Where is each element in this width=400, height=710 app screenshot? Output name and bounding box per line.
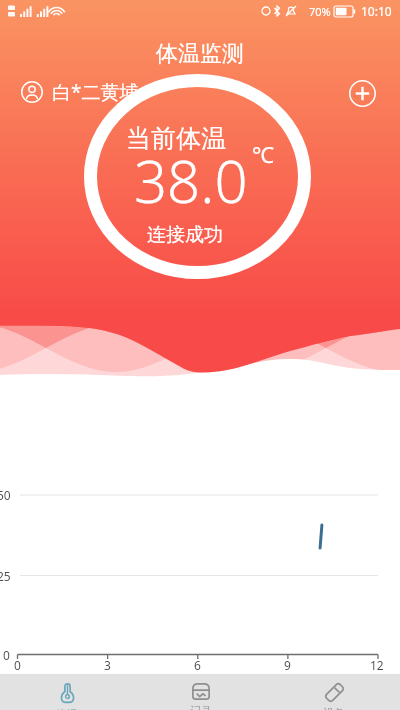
- staticText: 12: [370, 657, 384, 673]
- button[interactable]: 白*二黄埔: [21, 79, 139, 105]
- staticText: 体温: [56, 707, 78, 710]
- button[interactable]: Device: [267, 674, 400, 710]
- staticText: 记录: [190, 704, 212, 710]
- staticText: 白*二黄埔: [52, 79, 139, 105]
- staticText: 体温监测: [0, 40, 400, 68]
- staticText: 10:10: [361, 3, 392, 19]
- staticText: 50: [0, 487, 11, 503]
- staticText: ℃: [252, 139, 274, 169]
- button[interactable]: Add device: [349, 80, 376, 107]
- staticText: 0: [3, 647, 10, 663]
- staticText: 0: [14, 657, 21, 673]
- staticText: 3: [104, 657, 111, 673]
- staticText: 70%: [309, 4, 331, 19]
- staticText: 6: [194, 657, 201, 673]
- staticText: 连接成功: [147, 223, 223, 247]
- staticText: 设备: [323, 706, 345, 710]
- staticText: 当前体温: [126, 123, 226, 154]
- staticText: 9: [284, 657, 291, 673]
- button[interactable]: Temperature: [0, 674, 134, 710]
- button[interactable]: Records: [134, 674, 267, 710]
- staticText: 25: [0, 568, 11, 584]
- staticText: 38.0: [134, 141, 248, 220]
